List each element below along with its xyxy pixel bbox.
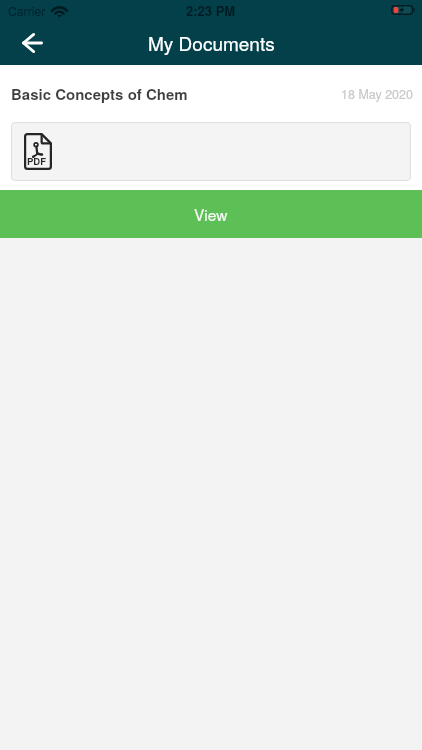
staticText: 18 May 2020	[341, 85, 413, 103]
staticText: Carrier	[8, 2, 46, 19]
button[interactable]: Back	[10, 21, 54, 65]
staticText: View	[194, 203, 228, 225]
button[interactable]: PDF	[11, 122, 411, 181]
staticText: 2:23 PM	[186, 1, 236, 20]
staticText: Basic Concepts of Chem	[11, 83, 188, 104]
button[interactable]: View	[0, 190, 422, 238]
staticText: My Documents	[148, 29, 275, 56]
staticText: PDF	[27, 154, 47, 168]
